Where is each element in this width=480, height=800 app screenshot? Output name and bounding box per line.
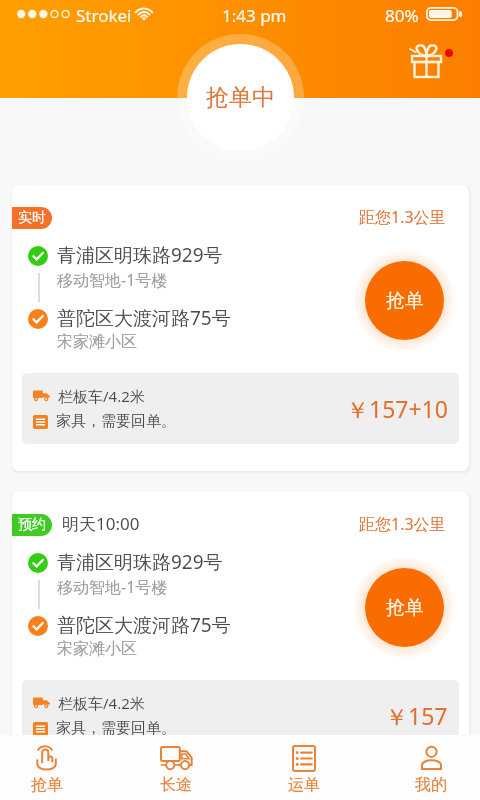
button[interactable]: 长途 <box>144 735 208 800</box>
staticText: 家具，需要回单。 <box>56 719 176 738</box>
staticText: 抢单 <box>386 596 424 620</box>
staticText: 家具，需要回单。 <box>56 412 176 431</box>
staticText: 实时 <box>18 209 46 227</box>
staticText: 移动智地-1号楼 <box>57 269 168 291</box>
staticText: ￥157 <box>385 700 448 731</box>
staticText: ￥157+10 <box>346 393 448 424</box>
button[interactable]: 抢单 <box>365 568 444 647</box>
button[interactable]: 抢单 <box>365 261 444 340</box>
staticText: 我的 <box>415 775 447 795</box>
button[interactable]: 运单 <box>272 735 336 800</box>
staticText: 栏板车/4.2米 <box>58 386 145 406</box>
button[interactable]: 预约 <box>12 492 469 778</box>
staticText: 移动智地-1号楼 <box>57 576 168 598</box>
staticText: 距您1.3公里 <box>359 206 446 228</box>
staticText: 宋家滩小区 <box>57 639 137 659</box>
staticText: 抢单 <box>31 775 63 795</box>
staticText: 青浦区明珠路929号 <box>57 549 223 575</box>
staticText: 长途 <box>160 775 192 795</box>
staticText: 运单 <box>288 775 320 795</box>
staticText: 预约 <box>18 516 46 534</box>
staticText: 距您1.3公里 <box>359 513 446 535</box>
staticText: 80% <box>385 4 419 27</box>
button[interactable]: 抢单中 <box>187 44 294 151</box>
staticText: 明天10:00 <box>62 512 140 535</box>
button[interactable]: 实时 <box>12 185 469 471</box>
staticText: 1:43 pm <box>222 4 287 27</box>
button[interactable]: 抢单 <box>15 735 79 800</box>
button[interactable]: Gift <box>405 40 451 82</box>
staticText: Strokei <box>76 4 132 27</box>
staticText: 普陀区大渡河路75号 <box>57 305 231 331</box>
button[interactable]: 我的 <box>399 735 463 800</box>
staticText: 抢单 <box>386 289 424 313</box>
staticText: 栏板车/4.2米 <box>58 693 145 713</box>
staticText: 青浦区明珠路929号 <box>57 242 223 268</box>
staticText: 普陀区大渡河路75号 <box>57 612 231 638</box>
staticText: 宋家滩小区 <box>57 332 137 352</box>
staticText: 抢单中 <box>206 83 275 112</box>
